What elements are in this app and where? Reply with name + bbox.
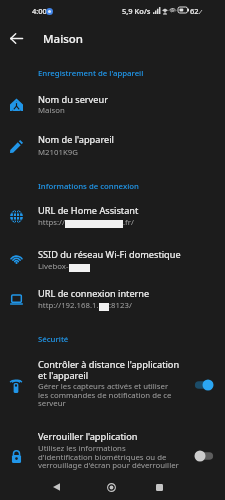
staticText: 5,9 Ko/s: [122, 6, 151, 16]
staticText: Livebox-: [38, 261, 69, 272]
staticText: Nom de l'appareil: [38, 133, 114, 146]
staticText: Utilisez les informations d'identificati…: [38, 443, 179, 470]
staticText: Gérer les capteurs activés et utiliser l…: [38, 381, 179, 408]
button[interactable]: [0, 195, 225, 229]
staticText: SSID du réseau Wi-Fi domestique: [38, 248, 181, 261]
button[interactable]: [0, 421, 225, 475]
staticText: Nom du serveur: [38, 93, 108, 106]
button[interactable]: Recent apps: [151, 479, 167, 495]
staticText: Informations de connexion: [38, 181, 139, 192]
staticText: 4:00: [32, 6, 47, 16]
staticText: Maison: [38, 105, 65, 116]
button[interactable]: Back: [48, 479, 64, 495]
staticText: Verrouiller l'application: [38, 430, 138, 443]
button[interactable]: [0, 124, 225, 158]
staticText: 62: [190, 6, 199, 16]
button[interactable]: [0, 239, 225, 273]
button[interactable]: [0, 349, 225, 413]
staticText: Maison: [43, 31, 84, 47]
staticText: :8123/: [109, 300, 132, 311]
button[interactable]: Home: [103, 479, 119, 495]
staticText: Sécurité: [38, 334, 69, 345]
staticText: Contrôler à distance l'application et l'…: [38, 358, 183, 381]
staticText: Enregistrement de l'appareil: [38, 68, 144, 79]
button[interactable]: [0, 84, 225, 117]
staticText: http://192.168.1.: [38, 300, 99, 311]
staticText: URL de connexion interne: [38, 287, 150, 300]
staticText: https://: [38, 217, 65, 228]
staticText: M2101K9G: [38, 147, 78, 158]
staticText: .fr/: [123, 217, 134, 228]
button[interactable]: [0, 278, 225, 312]
button[interactable]: Navigate up: [4, 26, 28, 50]
staticText: URL de Home Assistant: [38, 204, 139, 217]
